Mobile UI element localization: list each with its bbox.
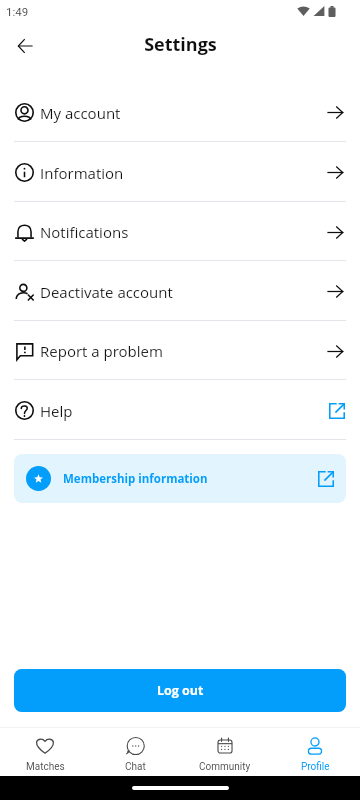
button[interactable]: Deactivate account xyxy=(0,261,360,320)
button[interactable]: Community xyxy=(180,728,270,776)
staticText: Deactivate account xyxy=(40,282,173,302)
button[interactable]: Back xyxy=(6,27,43,64)
staticText: My account xyxy=(40,103,121,123)
staticText: Community xyxy=(199,761,251,773)
staticText: Membership information xyxy=(63,471,208,487)
button[interactable]: Matches xyxy=(0,728,90,776)
button[interactable]: Log out xyxy=(14,669,346,712)
staticText: Log out xyxy=(157,682,204,699)
button[interactable]: Membership information xyxy=(14,454,346,503)
staticText: Information xyxy=(40,163,124,183)
button[interactable]: Report a problem xyxy=(0,321,360,379)
staticText: Chat xyxy=(125,761,146,773)
button[interactable]: Information xyxy=(0,142,360,201)
button[interactable]: Help xyxy=(0,380,360,439)
staticText: Matches xyxy=(26,761,65,773)
staticText: 1:49 xyxy=(6,5,29,18)
staticText: Help xyxy=(40,401,73,421)
staticText: Report a problem xyxy=(40,341,163,361)
button[interactable]: My account xyxy=(0,82,360,141)
button[interactable]: Chat xyxy=(90,728,180,776)
staticText: Settings xyxy=(144,32,217,57)
staticText: Profile xyxy=(301,761,330,773)
button[interactable]: Notifications xyxy=(0,202,360,260)
button[interactable]: Profile xyxy=(270,728,360,776)
staticText: Notifications xyxy=(40,222,129,242)
